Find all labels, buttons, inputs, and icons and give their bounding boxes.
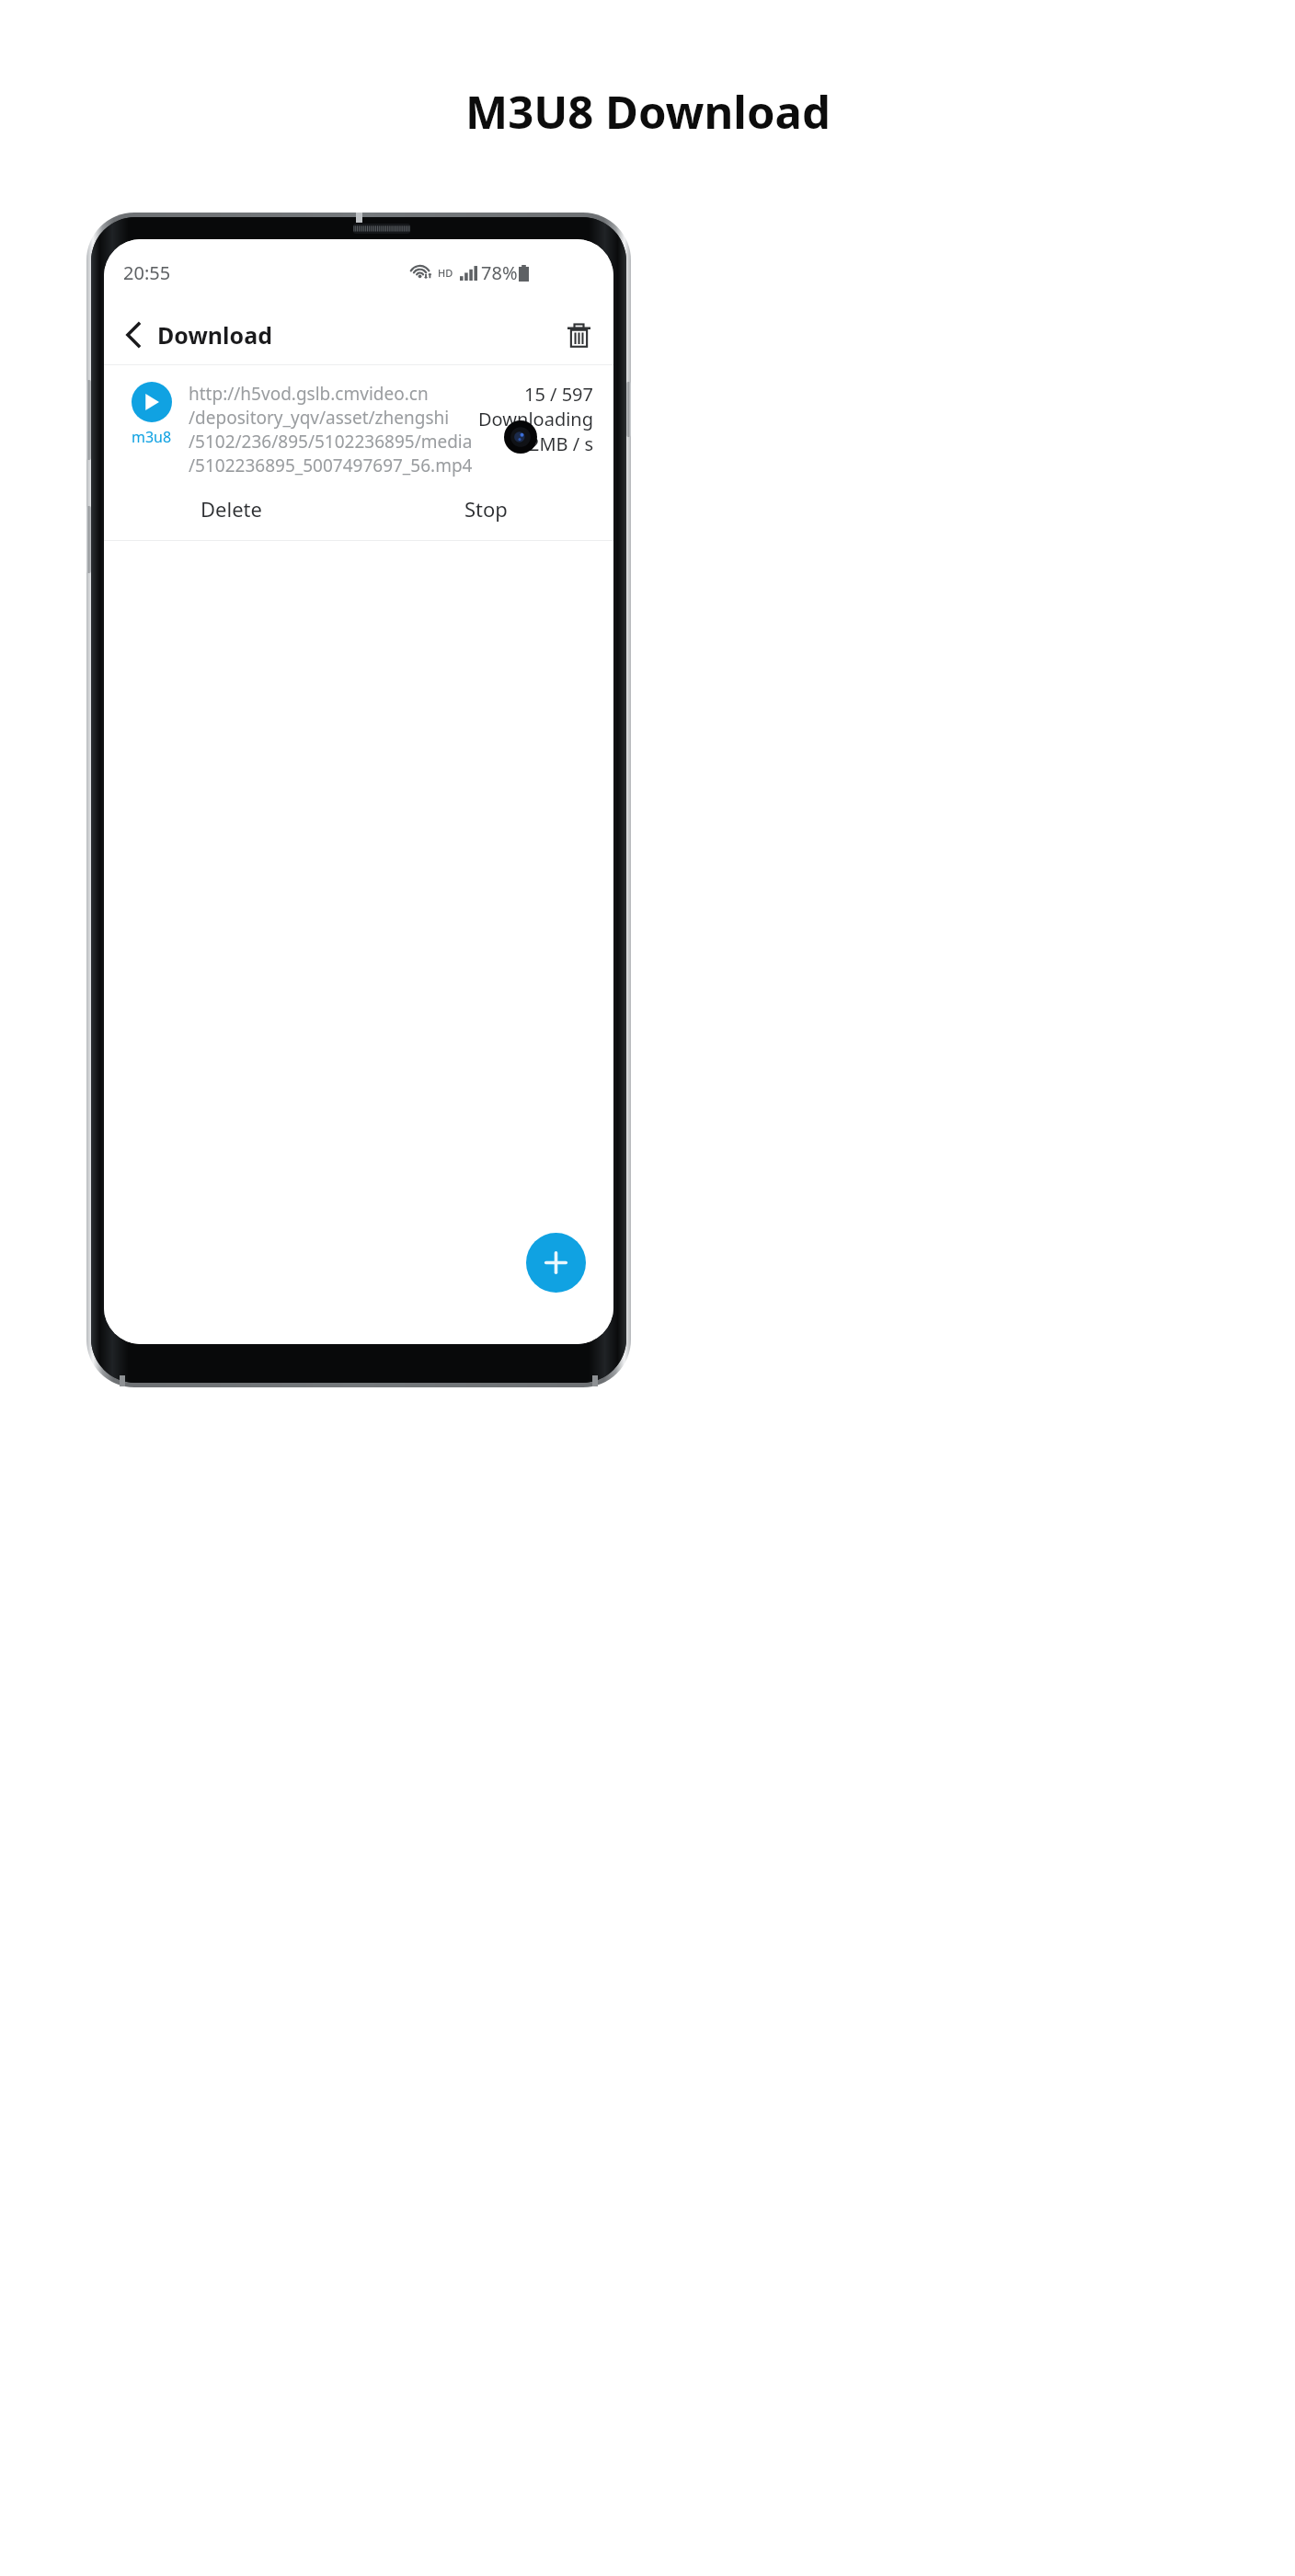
button[interactable]: Back — [111, 313, 155, 357]
staticText: HD — [438, 266, 453, 280]
staticText: Downloading — [478, 407, 593, 431]
staticText: 78% — [481, 260, 518, 285]
staticText: 20:55 — [123, 260, 171, 285]
staticText: m3u8 — [132, 427, 172, 447]
staticText: /5102236895_5007497697_56.mp4 — [189, 454, 473, 477]
staticText: M3U8 Download — [465, 81, 831, 143]
staticText: /depository_yqv/asset/zhengshi — [189, 406, 450, 430]
staticText: 9.2MB / s — [513, 431, 593, 456]
staticText: Stop — [464, 495, 508, 523]
staticText: /5102/236/895/5102236895/media — [189, 430, 473, 454]
button[interactable]: Add download — [526, 1233, 586, 1293]
staticText: Download — [157, 319, 272, 351]
staticText: 15 / 597 — [523, 382, 593, 407]
staticText: Delete — [201, 495, 262, 523]
button[interactable]: Delete all — [556, 313, 601, 357]
staticText: http://h5vod.gslb.cmvideo.cn — [189, 382, 429, 406]
button[interactable]: Stop — [359, 487, 613, 531]
button[interactable]: m3u8 — [104, 365, 613, 541]
button[interactable]: Delete — [104, 487, 359, 531]
